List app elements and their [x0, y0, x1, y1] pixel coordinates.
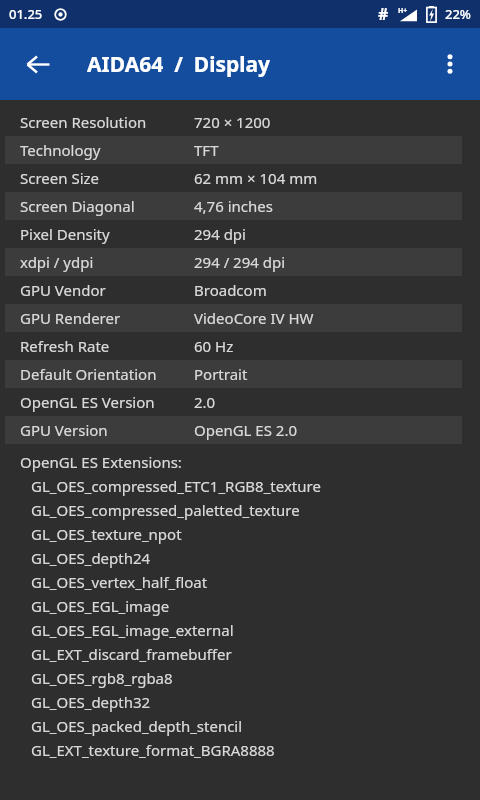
staticText: GL_EXT_texture_format_BGRA8888 — [31, 740, 275, 760]
button[interactable]: Default Orientation — [0, 360, 480, 388]
staticText: GL_OES_EGL_image — [31, 596, 170, 616]
button[interactable]: OpenGL ES Version — [0, 388, 480, 416]
staticText: GL_OES_compressed_ETC1_RGB8_texture — [31, 476, 321, 496]
staticText: 60 Hz — [194, 336, 234, 356]
staticText: GL_OES_vertex_half_float — [31, 572, 208, 592]
staticText: 4,76 inches — [194, 196, 273, 216]
staticText: OpenGL ES Version — [20, 392, 155, 412]
staticText: TFT — [194, 140, 219, 160]
staticText: Broadcom — [194, 280, 267, 300]
staticText: 294 dpi — [194, 224, 246, 244]
staticText: GPU Version — [20, 420, 108, 440]
button[interactable]: More options — [428, 42, 472, 86]
button[interactable]: Pixel Density — [0, 220, 480, 248]
button[interactable]: Refresh Rate — [0, 332, 480, 360]
staticText: 01.25 — [9, 5, 43, 23]
button[interactable]: Screen Size — [0, 164, 480, 192]
staticText: GL_OES_compressed_paletted_texture — [31, 500, 300, 520]
button[interactable]: Back — [14, 40, 62, 88]
staticText: 720 × 1200 — [194, 112, 271, 132]
staticText: GPU Renderer — [20, 308, 121, 328]
staticText: VideoCore IV HW — [194, 308, 314, 328]
staticText: GPU Vendor — [20, 280, 106, 300]
staticText: H+ — [398, 6, 408, 16]
button[interactable]: GPU Version — [0, 416, 480, 444]
staticText: AIDA64 / Display — [87, 50, 271, 79]
staticText: GL_OES_rgb8_rgba8 — [31, 668, 173, 688]
staticText: OpenGL ES 2.0 — [194, 420, 298, 440]
button[interactable]: Screen Resolution — [0, 108, 480, 136]
staticText: Technology — [20, 140, 101, 160]
staticText: xdpi / ydpi — [20, 252, 94, 272]
staticText: GL_OES_EGL_image_external — [31, 620, 234, 640]
staticText: Pixel Density — [20, 224, 110, 244]
staticText: GL_OES_texture_npot — [31, 524, 182, 544]
staticText: Screen Resolution — [20, 112, 147, 132]
staticText: GL_OES_packed_depth_stencil — [31, 716, 243, 736]
button[interactable]: Screen Diagonal — [0, 192, 480, 220]
button[interactable]: GPU Renderer — [0, 304, 480, 332]
staticText: Screen Size — [20, 168, 100, 188]
button[interactable]: xdpi / ydpi — [0, 248, 480, 276]
staticText: 62 mm × 104 mm — [194, 168, 318, 188]
staticText: # — [378, 3, 389, 25]
staticText: GL_EXT_discard_framebuffer — [31, 644, 232, 664]
staticText: Default Orientation — [20, 364, 157, 384]
staticText: 2.0 — [194, 392, 216, 412]
staticText: 294 / 294 dpi — [194, 252, 286, 272]
staticText: GL_OES_depth24 — [31, 548, 151, 568]
staticText: Refresh Rate — [20, 336, 110, 356]
staticText: OpenGL ES Extensions: — [20, 452, 182, 472]
staticText: Screen Diagonal — [20, 196, 135, 216]
button[interactable]: GPU Vendor — [0, 276, 480, 304]
staticText: 22% — [445, 5, 471, 23]
staticText: GL_OES_depth32 — [31, 692, 151, 712]
staticText: Portrait — [194, 364, 248, 384]
button[interactable]: Technology — [0, 136, 480, 164]
